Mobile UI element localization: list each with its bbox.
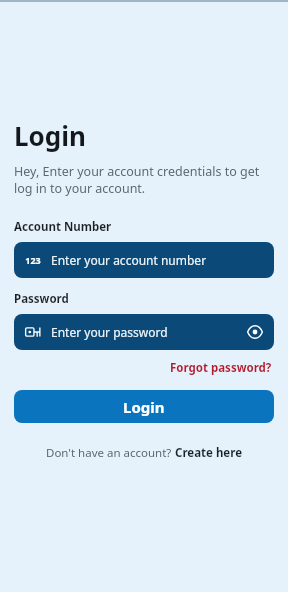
staticText: Account Number <box>14 219 112 235</box>
staticText: Forgot password? <box>170 360 272 376</box>
staticText: Password <box>14 291 69 307</box>
staticText: Login <box>123 397 165 417</box>
staticText: Enter your password <box>51 324 241 340</box>
staticText: Create here <box>175 445 243 461</box>
other: Account number <box>25 252 41 268</box>
staticText: 123 <box>25 254 41 266</box>
button[interactable]: Forgot password? <box>168 358 274 378</box>
button[interactable]: Password <box>14 314 274 350</box>
button[interactable]: Account number <box>14 242 274 278</box>
staticText: Don't have an account? <box>46 445 175 461</box>
button[interactable]: Create here <box>175 445 243 461</box>
button[interactable]: Login <box>14 390 274 423</box>
staticText: Login <box>14 118 86 153</box>
other: Password <box>25 324 41 340</box>
staticText: Hey, Enter your account credentials to g… <box>14 163 274 197</box>
other: Show password <box>247 324 263 340</box>
staticText: Enter your account number <box>51 252 263 268</box>
